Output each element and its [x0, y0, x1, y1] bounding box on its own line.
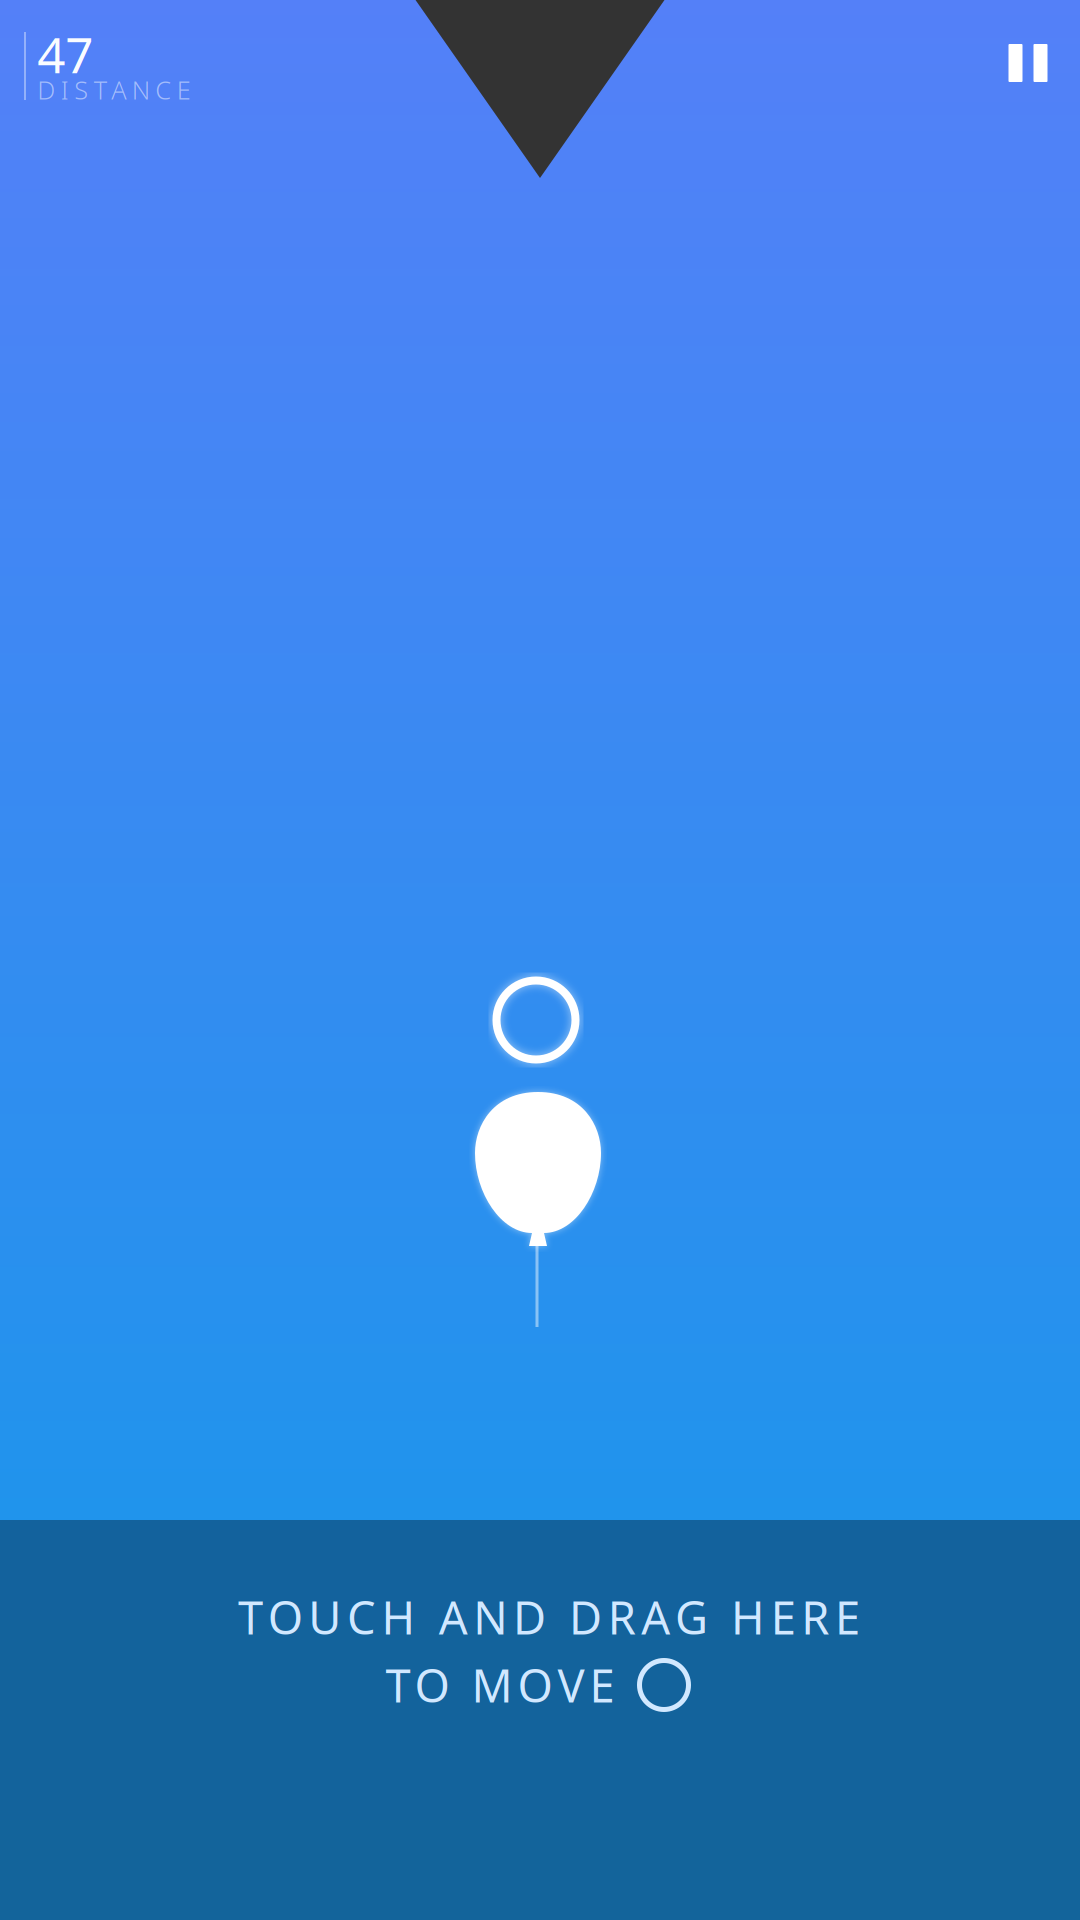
- staticText: TO MOVE: [385, 1655, 614, 1715]
- staticText: 47: [37, 21, 93, 87]
- staticText: TOUCH AND DRAG HERE: [238, 1587, 860, 1647]
- staticText: DISTANCE: [37, 73, 191, 106]
- button[interactable]: Pause: [976, 11, 1080, 115]
